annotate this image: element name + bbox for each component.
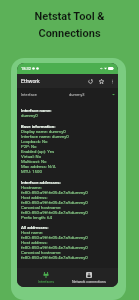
button[interactable]: More options <box>107 76 117 86</box>
button[interactable]: Interface <box>17 88 118 101</box>
staticText: Ethwork <box>21 78 40 84</box>
staticText: Mac address: N/A <box>21 164 56 169</box>
staticText: fe80::850:a9ff:fe05:4e7a%dummy0 <box>21 200 88 205</box>
staticText: fe80::850:a9ff:fe05:4e7a%dummy0 <box>21 210 88 215</box>
staticText: Virtual: No <box>21 154 42 159</box>
staticText: fe80::850:a9ff:fe05:4e7a%dummy0 <box>21 245 88 250</box>
staticText: Canonical hostname: <box>21 205 62 210</box>
staticText: Host name: <box>21 230 44 235</box>
staticText: Hostname: <box>21 185 42 190</box>
staticText: Interface name: <box>21 108 52 113</box>
button[interactable]: Interfaces <box>25 268 67 287</box>
staticText: Canonical hostname: <box>21 250 62 255</box>
staticText: P2P: No <box>21 144 37 149</box>
staticText: Netstat Tool & Connections <box>0 10 139 40</box>
staticText: Enabled (up): Yes <box>21 149 55 154</box>
staticText: Interface <box>21 92 37 97</box>
staticText: Base information: <box>21 124 56 129</box>
staticText: Interfaces <box>38 280 55 284</box>
staticText: Interface name: dummy0 <box>21 134 69 139</box>
staticText: Loopback: No <box>21 139 48 144</box>
button[interactable]: Refresh <box>85 76 95 86</box>
staticText: Multicast: No <box>21 159 47 164</box>
staticText: Host address: <box>21 240 48 245</box>
staticText: All addresses: <box>21 225 49 230</box>
staticText: Host address: <box>21 195 48 200</box>
staticText: fe80::850:a9ff:fe05:4e7a%dummy0 <box>21 190 88 195</box>
button[interactable]: Network connections <box>67 268 110 287</box>
button[interactable]: Bookmark <box>96 76 106 86</box>
staticText: Prefix length: 64 <box>21 215 52 220</box>
staticText: Interface addresses: <box>21 180 61 185</box>
staticText: dummy3 <box>69 92 85 97</box>
staticText: Network connections <box>72 280 106 284</box>
staticText: Display name: dummy0 <box>21 129 66 134</box>
staticText: MTU: 1500 <box>21 169 42 174</box>
staticText: 18:32 <box>21 66 31 71</box>
staticText: dummy0 <box>21 113 38 118</box>
staticText: fe80::850:a9ff:fe05:4e7a%dummy0 <box>21 235 88 240</box>
staticText: fe80::850:a9ff:fe05:4e7a%dummy0 <box>21 255 88 260</box>
